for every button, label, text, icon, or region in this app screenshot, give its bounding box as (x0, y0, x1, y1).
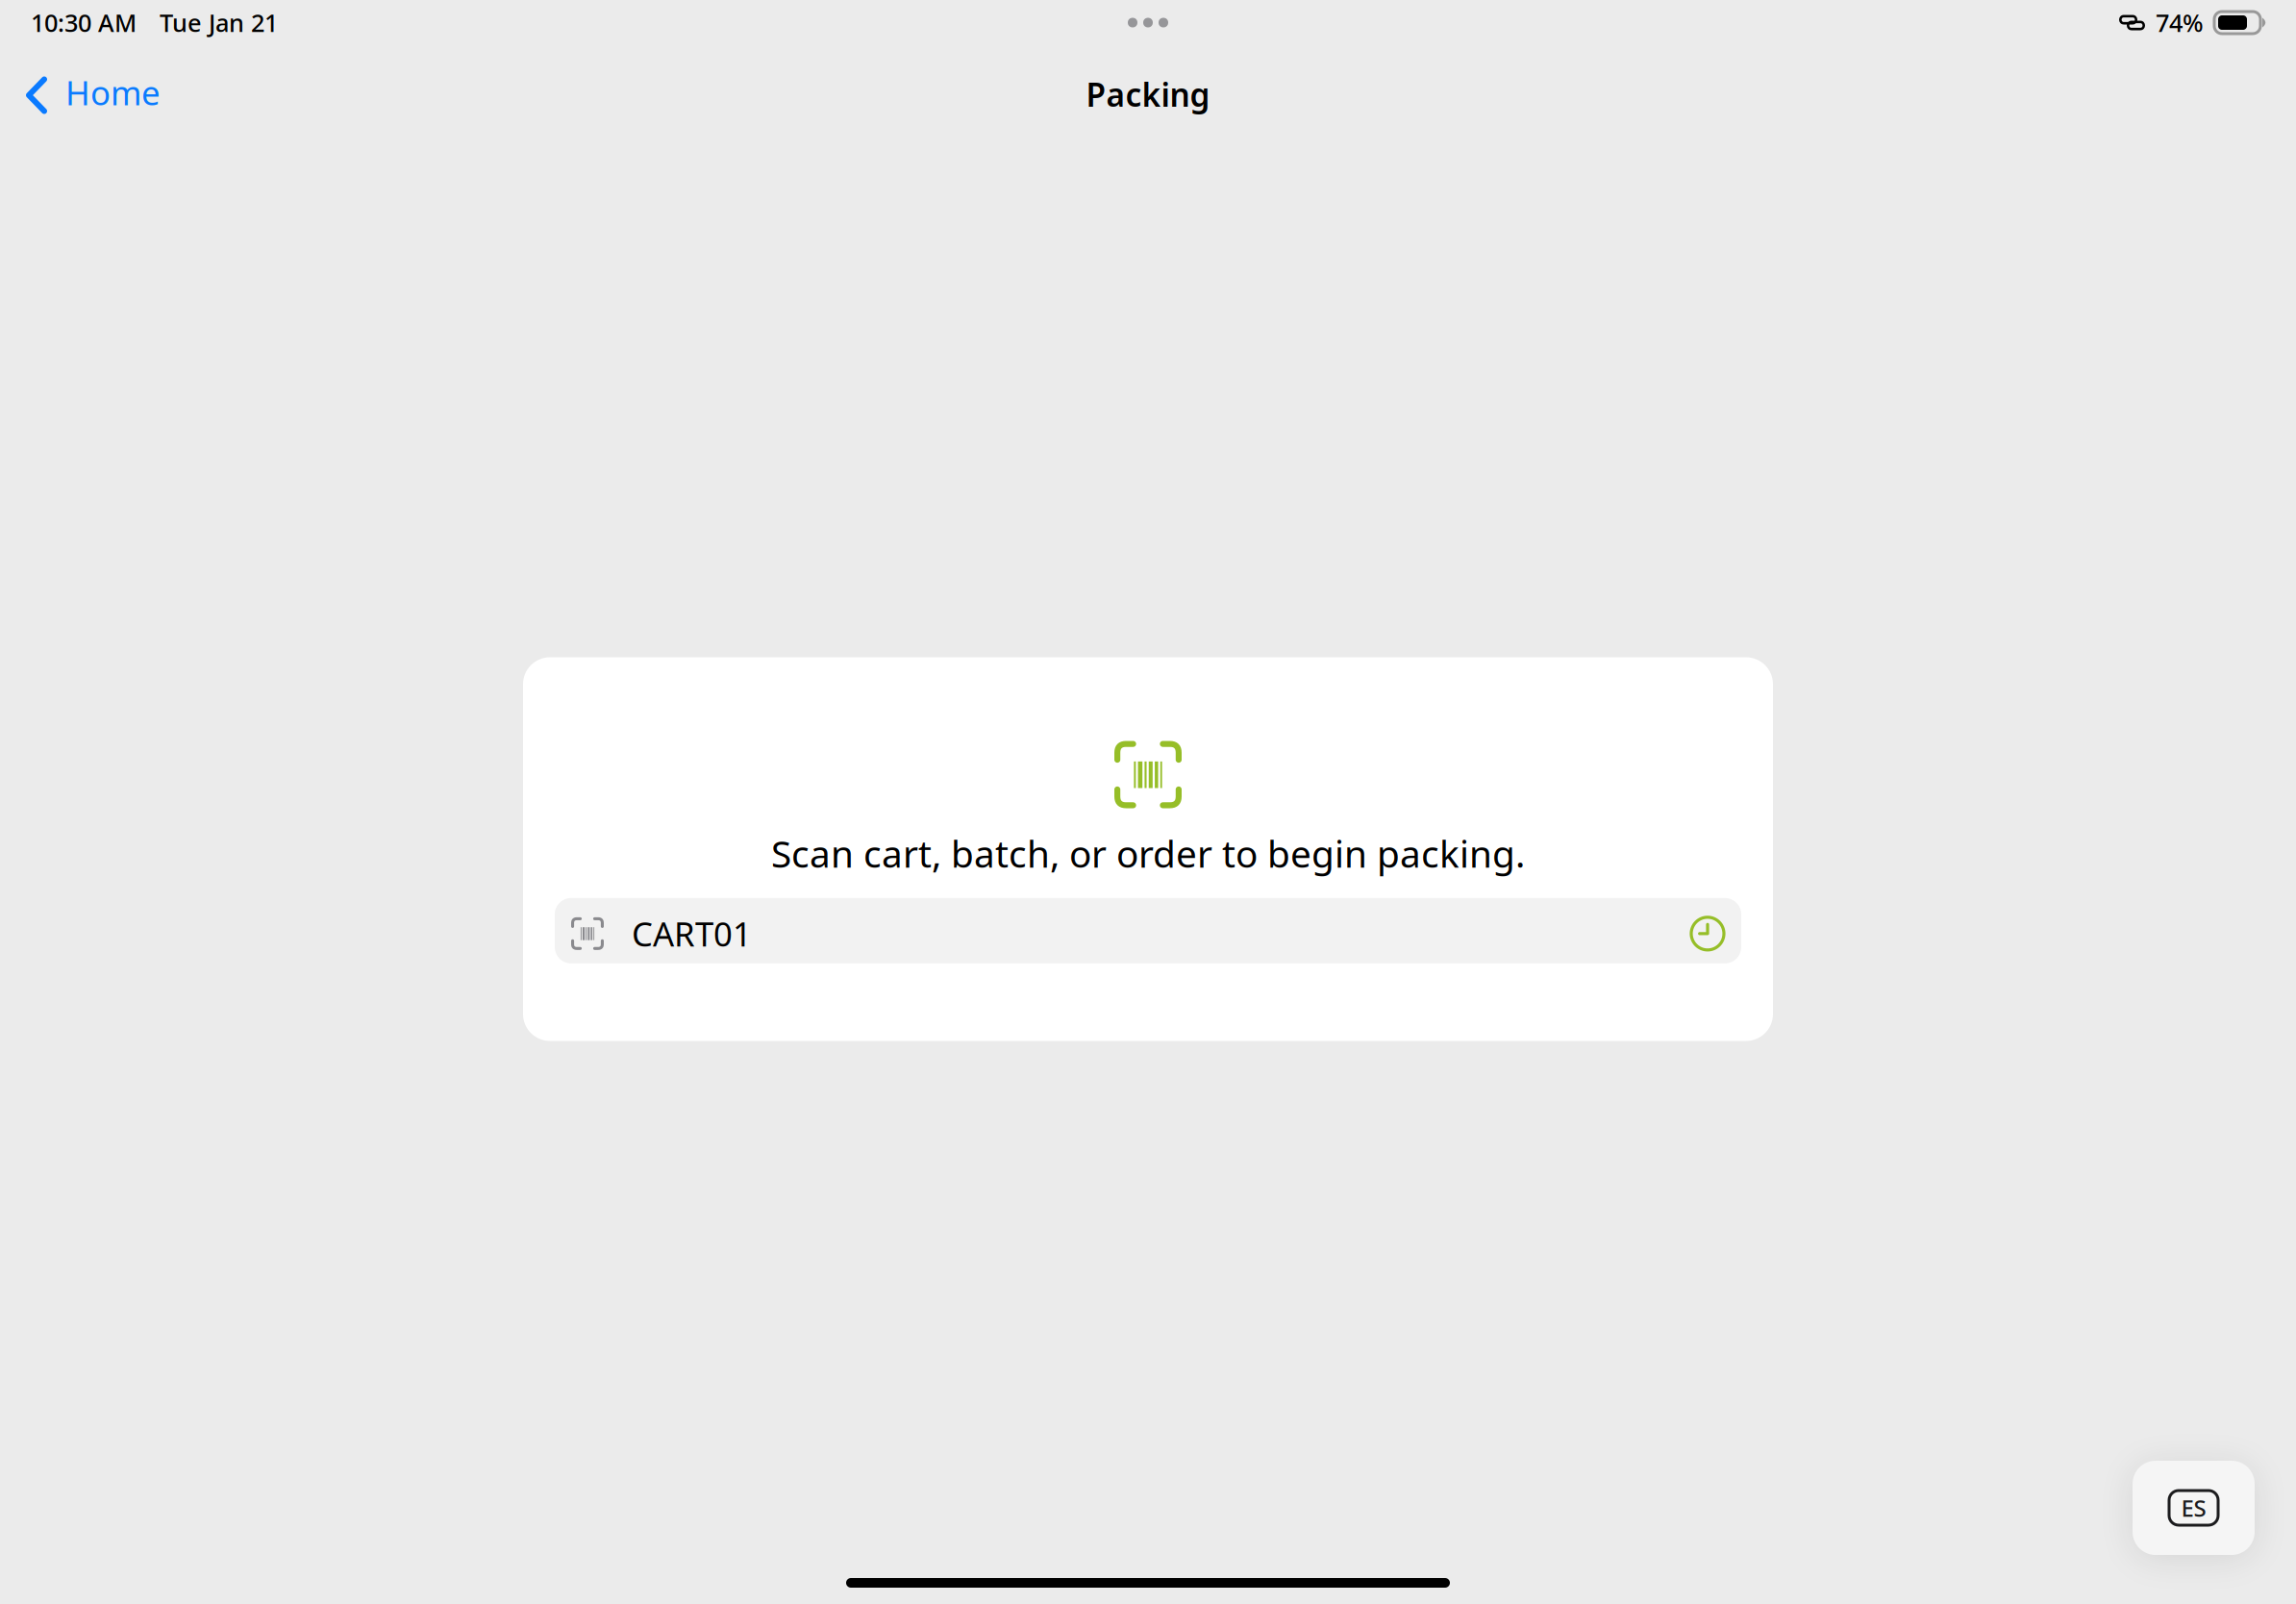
button[interactable]: Home (16, 57, 170, 134)
staticText: 10:30 AM (31, 6, 137, 39)
staticText: Tue Jan 21 (160, 6, 278, 39)
button[interactable]: Keyboard language (2133, 1461, 2255, 1555)
staticText: 74% (2156, 6, 2204, 39)
staticText: Scan cart, batch, or order to begin pack… (771, 828, 1525, 878)
staticText: Home (65, 70, 161, 114)
button[interactable]: CART01 (555, 898, 1741, 963)
staticText: ES (2181, 1493, 2206, 1523)
staticText: Packing (1086, 73, 1210, 116)
staticText: CART01 (632, 911, 752, 956)
